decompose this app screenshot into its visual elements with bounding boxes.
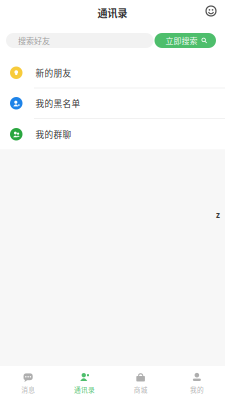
staticText: 通讯录 bbox=[97, 6, 127, 20]
button[interactable]: 消息 bbox=[0, 366, 56, 400]
button[interactable]: 通讯录 bbox=[56, 366, 112, 400]
staticText: 通讯录 bbox=[74, 385, 95, 394]
staticText: 消息 bbox=[21, 385, 35, 394]
staticText: 立即搜索 bbox=[165, 35, 197, 46]
staticText: 我的黑名单 bbox=[35, 97, 80, 109]
button[interactable]: 新的朋友 bbox=[0, 58, 225, 88]
button[interactable]: My profile bbox=[203, 3, 219, 19]
button[interactable]: 我的黑名单 bbox=[0, 88, 225, 119]
staticText: 新的朋友 bbox=[35, 66, 71, 79]
staticText: 搜索好友 bbox=[18, 35, 50, 46]
button[interactable]: 立即搜索 bbox=[154, 33, 216, 48]
button[interactable]: 商城 bbox=[112, 366, 169, 400]
button[interactable]: 我的群聊 bbox=[0, 119, 225, 149]
staticText: 我的群聊 bbox=[35, 128, 71, 140]
button[interactable]: 我的 bbox=[169, 366, 225, 400]
staticText: 商城 bbox=[134, 385, 148, 394]
staticText: z bbox=[216, 209, 220, 220]
staticText: 我的 bbox=[190, 385, 204, 394]
